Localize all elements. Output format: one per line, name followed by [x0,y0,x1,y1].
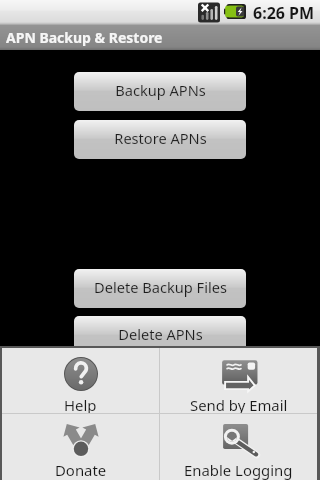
button[interactable]: Backup APNs [74,72,246,111]
button[interactable]: Donate [2,414,159,480]
button[interactable]: Help [2,348,159,413]
staticText: Send by Email [190,395,288,413]
staticText: Delete Backup Files [94,277,227,297]
staticText: Enable Logging [184,460,293,480]
button[interactable]: Enable Logging [160,414,317,480]
button[interactable]: Delete Backup Files [74,269,246,308]
staticText: 6:26 PM [253,2,315,24]
staticText: Donate [55,460,107,480]
staticText: APN Backup & Restore [6,28,163,47]
button[interactable]: Send by Email [160,348,317,413]
staticText: Help [64,395,97,413]
button[interactable]: Delete APNs [74,316,246,355]
staticText: Restore APNs [114,128,207,148]
button[interactable]: Restore APNs [74,120,246,159]
staticText: Backup APNs [115,80,206,100]
staticText: Delete APNs [118,324,203,344]
